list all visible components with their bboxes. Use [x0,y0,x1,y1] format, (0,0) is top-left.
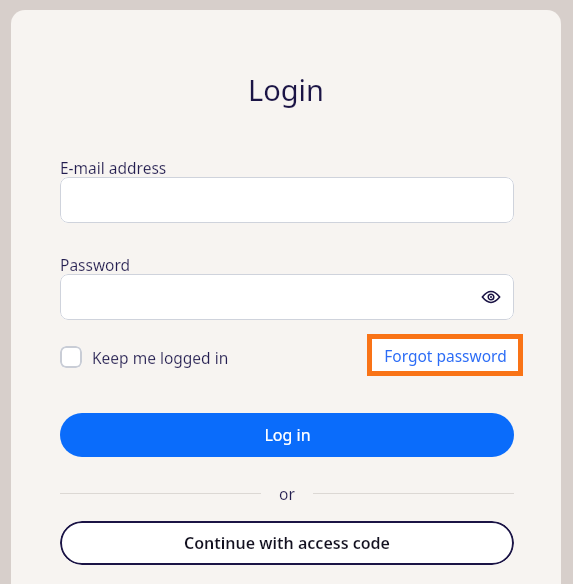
staticText: Continue with access code [184,532,390,554]
button[interactable]: Log in [60,413,514,457]
button[interactable]: Keep me logged in [60,341,229,373]
staticText: Login [248,70,324,109]
staticText: E-mail address [60,157,167,178]
button[interactable]: Forgot password [372,339,518,371]
button[interactable]: Show password [60,274,514,320]
button[interactable]: Show password [478,284,504,310]
button[interactable]: Continue with access code [60,521,514,565]
staticText: Keep me logged in [92,347,229,368]
button[interactable] [60,177,514,223]
staticText: or [279,483,295,504]
staticText: Forgot password [384,345,507,366]
staticText: Log in [264,424,311,446]
staticText: Password [60,254,131,275]
